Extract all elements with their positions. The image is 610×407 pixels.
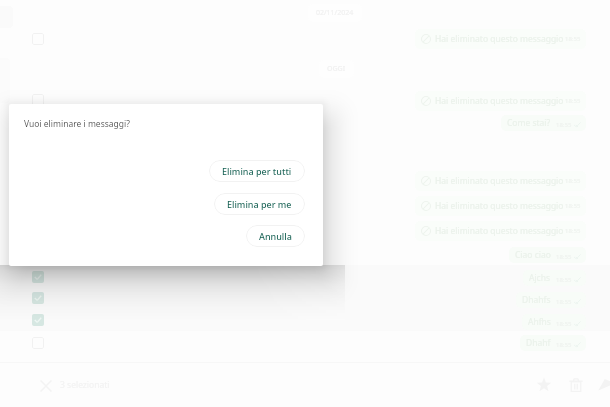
staticText: Dhahfs [522, 294, 551, 306]
staticText: Come stai? [507, 117, 551, 129]
button[interactable]: Delete [568, 377, 584, 393]
staticText: 18:55 [565, 177, 581, 185]
staticText: Dhahf [526, 337, 551, 349]
button[interactable]: Close selection [38, 378, 54, 394]
staticText: Hai eliminato questo messaggio [435, 175, 564, 187]
staticText: OGGI [327, 64, 346, 74]
staticText: Hai eliminato questo messaggio [435, 95, 564, 107]
staticText: Ajchs [529, 272, 551, 284]
staticText: 18:55 [565, 227, 581, 235]
button[interactable]: Select message [32, 94, 44, 106]
button[interactable]: Select message [32, 292, 44, 304]
button[interactable]: Select message [32, 337, 44, 349]
staticText: Hai eliminato questo messaggio [435, 225, 564, 237]
staticText: 02/11/2024 [316, 8, 354, 18]
staticText: Ahfhs [528, 316, 551, 328]
staticText: 3 selezionati [60, 379, 110, 391]
staticText: Ciao ciao [515, 249, 551, 261]
staticText: Hai eliminato questo messaggio [435, 33, 564, 45]
staticText: 18:55 [565, 202, 581, 210]
staticText: 18:55 [565, 97, 581, 105]
button[interactable]: Elimina per me [214, 193, 305, 215]
button[interactable]: Select message [32, 314, 44, 326]
button[interactable]: Forward [598, 377, 610, 393]
staticText: Elimina per me [227, 198, 292, 210]
button[interactable]: Elimina per tutti [209, 160, 305, 182]
staticText: Elimina per tutti [222, 165, 292, 177]
button[interactable]: Annulla [246, 225, 305, 247]
staticText: Annulla [259, 230, 292, 242]
staticText: Hai eliminato questo messaggio [435, 200, 564, 212]
button[interactable]: Star [536, 377, 552, 393]
button[interactable]: Select message [32, 33, 44, 45]
button[interactable]: Select message [32, 271, 44, 283]
staticText: 18:55 [565, 35, 581, 43]
staticText: Vuoi eliminare i messaggi? [24, 118, 130, 130]
